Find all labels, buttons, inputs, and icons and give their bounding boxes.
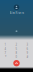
staticText: 4	[4, 47, 6, 51]
button[interactable]: #	[22, 55, 33, 59]
staticText: 8	[15, 51, 17, 55]
staticText: 7	[4, 51, 6, 55]
button[interactable]: 7	[0, 51, 11, 54]
button[interactable]: 2	[11, 43, 22, 46]
staticText: 2	[15, 43, 17, 46]
staticText: *	[5, 55, 6, 59]
staticText: 3	[26, 43, 28, 46]
staticText: Alex Rivera	[9, 11, 23, 15]
staticText: 1	[4, 43, 6, 46]
staticText: 9	[26, 51, 28, 55]
button[interactable]: 9	[22, 51, 33, 54]
button[interactable]: 6	[22, 47, 33, 50]
button[interactable]: 3	[22, 43, 33, 46]
button[interactable]: 5	[11, 47, 22, 50]
staticText: #	[26, 55, 28, 59]
staticText: 5	[15, 47, 17, 51]
staticText: 6	[26, 47, 28, 51]
staticText: 0	[15, 55, 17, 59]
button[interactable]: *	[0, 55, 11, 59]
button[interactable]: 4	[0, 47, 11, 50]
button[interactable]: 1	[0, 43, 11, 46]
button[interactable]: 0	[11, 55, 22, 59]
button[interactable]: 8	[11, 51, 22, 54]
button[interactable]: End call	[13, 60, 20, 66]
